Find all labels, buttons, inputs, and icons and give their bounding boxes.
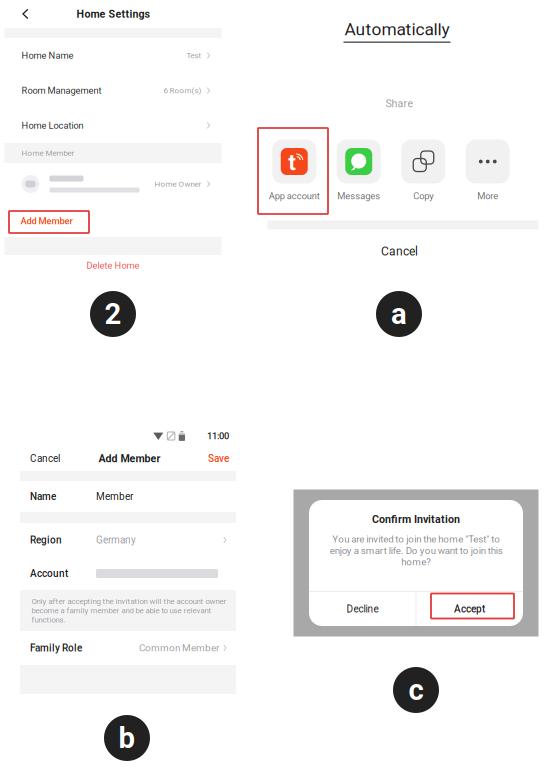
staticText: Delete Home [86, 260, 139, 271]
button[interactable]: t [262, 138, 326, 202]
staticText: Home Member [21, 148, 74, 158]
staticText: Share [385, 97, 413, 110]
staticText: Confirm Invitation [372, 513, 460, 525]
staticText: 2 [104, 297, 121, 331]
button[interactable]: Delete Home [4, 255, 221, 276]
button[interactable]: Cancel [30, 447, 82, 469]
button[interactable]: Room Management [4, 73, 221, 108]
button[interactable]: More [455, 138, 520, 202]
staticText: Save [208, 453, 229, 464]
staticText: t [288, 149, 296, 176]
button[interactable]: Home Location [4, 108, 221, 143]
button[interactable]: Cancel [239, 241, 542, 261]
staticText: Accept [454, 603, 485, 615]
staticText: Home Location [21, 120, 83, 131]
staticText: Decline [347, 603, 379, 615]
staticText: Cancel [381, 244, 418, 259]
staticText: Add Member [20, 215, 72, 226]
staticText: Add Member [98, 452, 160, 465]
button[interactable]: Region [20, 523, 236, 557]
staticText: a [391, 297, 407, 331]
staticText: b [118, 721, 135, 755]
staticText: Home Settings [76, 8, 149, 20]
staticText: Name [30, 491, 56, 502]
staticText: Account [30, 568, 68, 579]
staticText: Home Owner [154, 179, 201, 189]
staticText: Test [186, 51, 201, 60]
button[interactable]: Home Owner [4, 163, 221, 205]
staticText: Room Management [21, 85, 101, 96]
button[interactable]: Messages [326, 138, 391, 202]
button[interactable]: Save [177, 447, 229, 469]
staticText: More [477, 190, 498, 201]
staticText: Copy [413, 190, 433, 201]
staticText: c [408, 673, 423, 707]
staticText: 6 Room(s) [163, 86, 201, 95]
staticText: Cancel [30, 453, 60, 464]
staticText: Only after accepting the invitation will… [31, 597, 226, 624]
button[interactable]: Decline [310, 592, 416, 626]
button[interactable]: Accept [416, 592, 522, 626]
staticText: 11:00 [207, 430, 229, 441]
staticText: Home Name [21, 50, 73, 61]
button[interactable]: Home Name [4, 38, 221, 73]
staticText: You are invited to join the home "Test" … [329, 533, 502, 568]
button[interactable]: Copy [391, 138, 455, 202]
staticText: Messages [337, 190, 380, 201]
button[interactable]: Add Member [4, 205, 221, 237]
staticText: Member [96, 491, 133, 502]
button[interactable]: Family Role [20, 631, 236, 665]
staticText: Common Member [139, 642, 219, 654]
button[interactable]: Back [4, 0, 46, 28]
staticText: App account [269, 190, 320, 201]
staticText: Automatically [344, 19, 449, 39]
staticText: Germany [96, 534, 136, 546]
staticText: Region [30, 534, 62, 546]
staticText: Family Role [30, 642, 82, 654]
